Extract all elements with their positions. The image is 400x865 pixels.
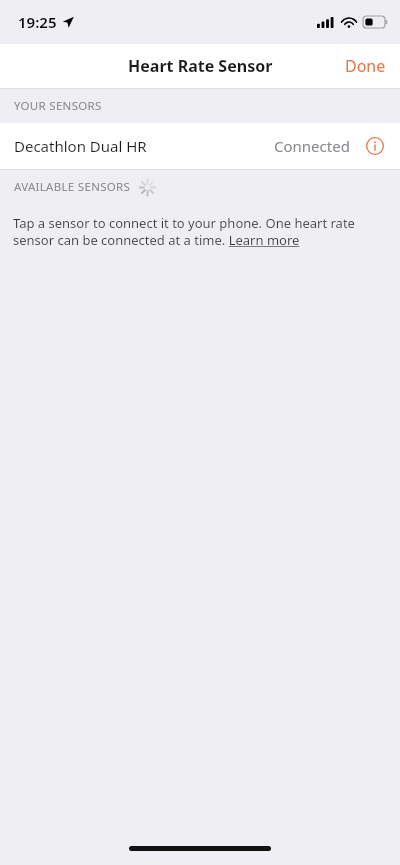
staticText: Connected bbox=[274, 136, 350, 156]
staticText: 19:25 bbox=[18, 12, 57, 32]
staticText: Heart Rate Sensor bbox=[128, 55, 273, 77]
button[interactable]: Decathlon Dual HR bbox=[0, 123, 400, 169]
button[interactable]: Sensor info bbox=[362, 133, 388, 159]
staticText: Done bbox=[345, 55, 386, 77]
staticText: Tap a sensor to connect it to your phone… bbox=[13, 214, 374, 249]
staticText: AVAILABLE SENSORS bbox=[14, 179, 131, 195]
button[interactable]: Done bbox=[331, 47, 400, 85]
staticText: YOUR SENSORS bbox=[14, 98, 102, 114]
staticText: Decathlon Dual HR bbox=[14, 136, 147, 156]
